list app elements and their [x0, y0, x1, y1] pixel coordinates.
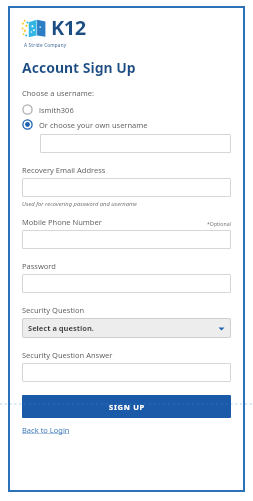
- staticText: Mobile Phone Number: [22, 217, 207, 227]
- button[interactable]: [40, 134, 231, 153]
- staticText: Select a question.: [28, 323, 218, 333]
- staticText: SIGN UP: [109, 402, 145, 412]
- staticText: Security Question: [22, 305, 85, 315]
- staticText: Used for recovering password and usernam…: [22, 200, 137, 208]
- staticText: K12: [51, 14, 86, 41]
- button[interactable]: SIGN UP: [22, 395, 231, 418]
- staticText: Password: [22, 261, 56, 271]
- staticText: Recovery Email Address: [22, 165, 106, 175]
- staticText: *Optional: [207, 220, 231, 227]
- staticText: Account Sign Up: [22, 58, 136, 77]
- staticText: lsmith306: [39, 105, 74, 115]
- button[interactable]: Or choose your own username: [22, 119, 231, 130]
- staticText: A Stride Company: [24, 42, 67, 48]
- staticText: Choose a username:: [22, 88, 95, 98]
- button[interactable]: lsmith306: [22, 104, 231, 115]
- button[interactable]: [22, 363, 231, 382]
- button[interactable]: [22, 178, 231, 197]
- button[interactable]: [22, 274, 231, 293]
- button[interactable]: Back to Login: [22, 425, 70, 435]
- staticText: Or choose your own username: [39, 120, 148, 130]
- button[interactable]: Select a question.: [22, 318, 231, 338]
- button[interactable]: [22, 230, 231, 249]
- staticText: Security Question Answer: [22, 350, 113, 360]
